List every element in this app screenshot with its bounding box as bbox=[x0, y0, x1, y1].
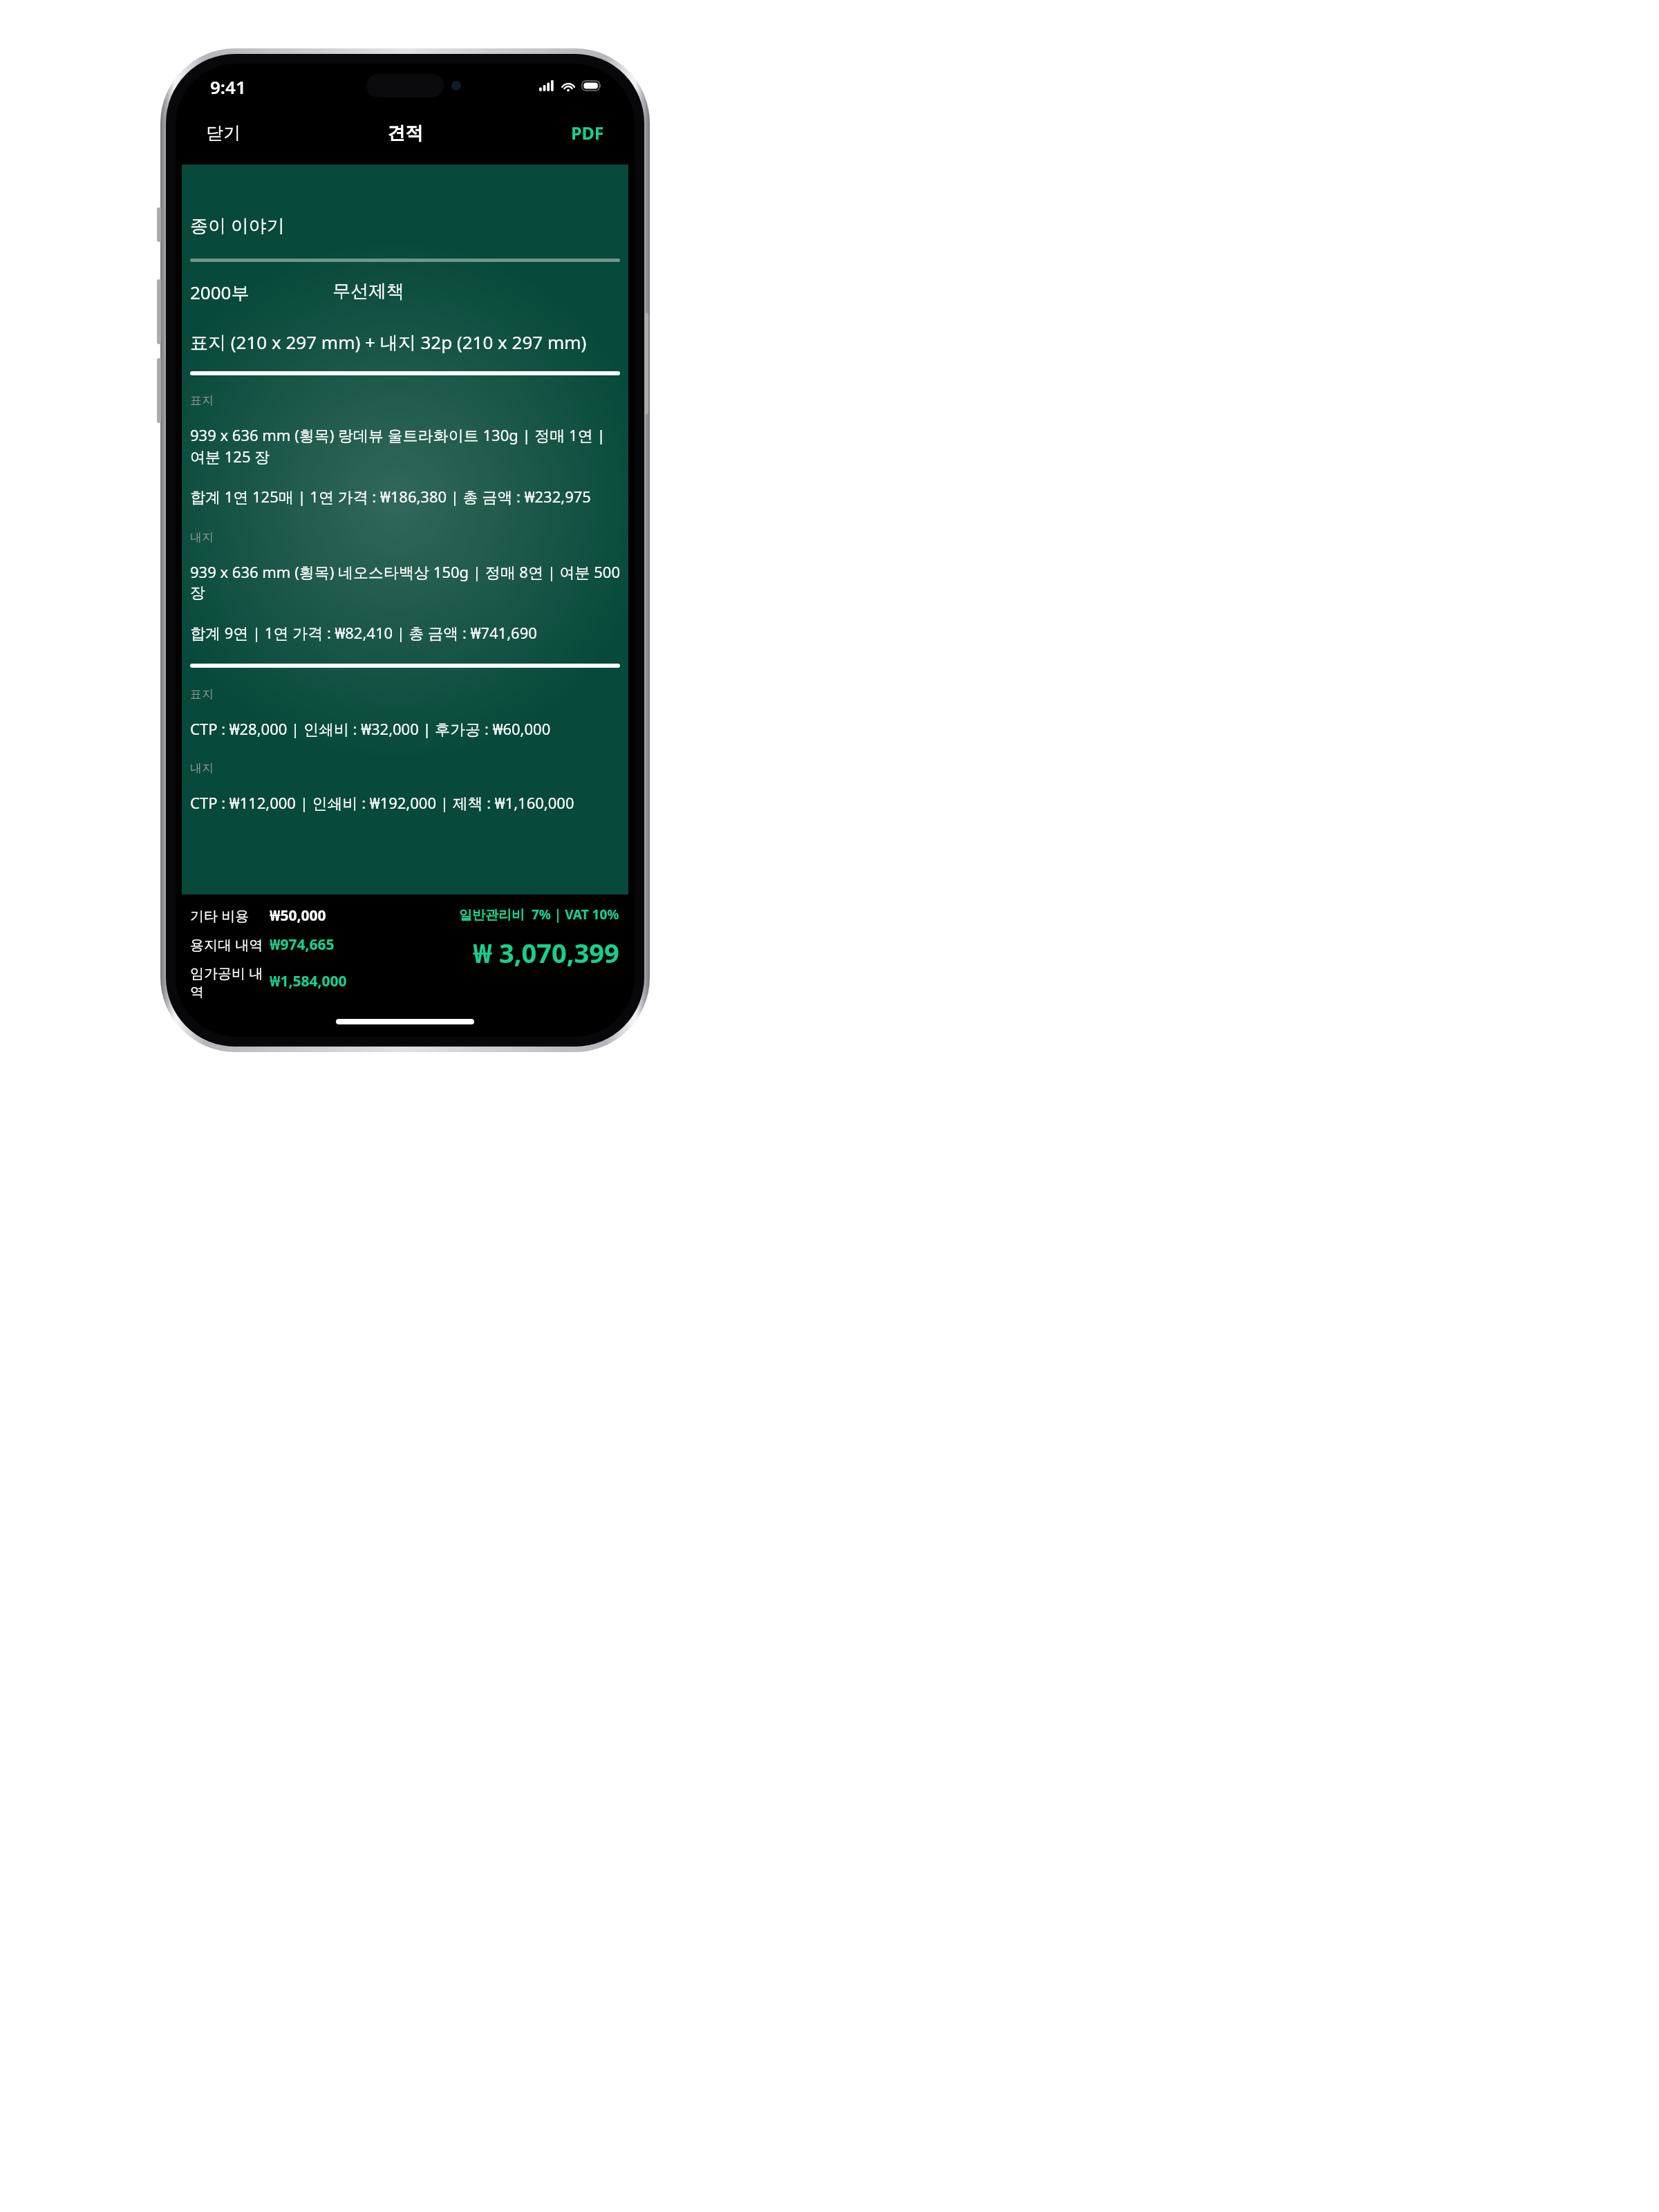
staticText: 합계 1연 125매 | 1연 가격 : ₩186,380 | 총 금액 : ₩… bbox=[190, 486, 591, 507]
staticText: 939 x 636 mm (횡목) 네오스타백상 150g | 정매 8연 | … bbox=[190, 561, 620, 603]
staticText: ₩50,000 bbox=[270, 906, 326, 926]
staticText: 기타 비용 bbox=[190, 906, 250, 925]
staticText: 합계 9연 | 1연 가격 : ₩82,410 | 총 금액 : ₩741,69… bbox=[190, 622, 537, 643]
staticText: 내지 bbox=[190, 761, 214, 776]
staticText: 닫기 bbox=[206, 122, 241, 144]
staticText: ₩1,584,000 bbox=[270, 971, 347, 991]
staticText: ₩974,665 bbox=[270, 935, 335, 955]
staticText: 용지대 내역 bbox=[190, 935, 263, 954]
staticText: 표지 (210 x 297 mm) + 내지 32p (210 x 297 mm… bbox=[190, 330, 587, 355]
staticText: 견적 bbox=[387, 122, 423, 144]
staticText: 표지 bbox=[190, 687, 214, 702]
staticText: PDF bbox=[571, 121, 604, 144]
staticText: 무선제책 bbox=[332, 280, 404, 303]
button[interactable]: 종이 이야기 bbox=[182, 165, 628, 894]
staticText: 9:41 bbox=[210, 75, 246, 99]
staticText: 임가공비 내역 bbox=[190, 964, 270, 998]
button[interactable]: 닫기 bbox=[176, 114, 271, 152]
button[interactable]: PDF bbox=[541, 113, 635, 153]
staticText: 표지 bbox=[190, 393, 214, 408]
staticText: 939 x 636 mm (횡목) 랑데뷰 울트라화이트 130g | 정매 1… bbox=[190, 424, 620, 467]
staticText: CTP : ₩112,000 | 인쇄비 : ₩192,000 | 제책 : ₩… bbox=[190, 792, 574, 813]
staticText: ₩ 3,070,399 bbox=[473, 935, 619, 971]
staticText: 일반관리비 7% | VAT 10% bbox=[459, 906, 619, 924]
staticText: CTP : ₩28,000 | 인쇄비 : ₩32,000 | 후가공 : ₩6… bbox=[190, 718, 551, 739]
staticText: 내지 bbox=[190, 530, 214, 545]
staticText: 2000부 bbox=[190, 280, 250, 305]
staticText: 종이 이야기 bbox=[190, 213, 285, 238]
